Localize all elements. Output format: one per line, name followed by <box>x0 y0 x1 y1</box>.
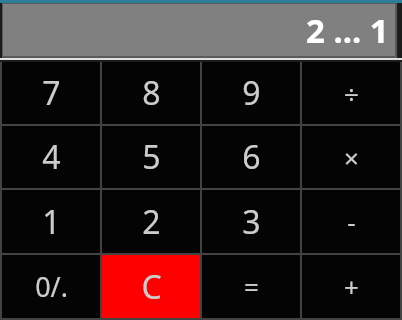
staticText: 8 <box>142 71 161 115</box>
button[interactable]: 4 <box>2 126 100 188</box>
button[interactable]: 1 <box>2 190 100 253</box>
button[interactable]: 3 <box>202 190 300 253</box>
button[interactable]: 0/. <box>2 255 100 318</box>
staticText: 3 <box>242 200 261 244</box>
button[interactable]: × <box>302 126 400 188</box>
button[interactable]: C <box>102 255 200 318</box>
staticText: = <box>244 269 259 304</box>
button[interactable]: = <box>202 255 300 318</box>
staticText: 0/. <box>35 268 68 305</box>
staticText: - <box>347 204 356 239</box>
button[interactable]: 9 <box>202 62 300 124</box>
button[interactable]: 2 <box>102 190 200 253</box>
button[interactable]: 8 <box>102 62 200 124</box>
button[interactable]: 5 <box>102 126 200 188</box>
staticText: 2 <box>142 200 161 244</box>
staticText: 4 <box>42 135 61 179</box>
staticText: 9 <box>242 71 261 115</box>
button[interactable]: + <box>302 255 400 318</box>
staticText: ÷ <box>344 76 359 111</box>
button[interactable]: ÷ <box>302 62 400 124</box>
button[interactable]: 6 <box>202 126 300 188</box>
staticText: C <box>141 265 162 309</box>
button[interactable]: - <box>302 190 400 253</box>
staticText: 6 <box>242 135 261 179</box>
staticText: 2 ... 1 <box>306 8 389 53</box>
staticText: + <box>344 269 359 304</box>
staticText: 1 <box>42 200 61 244</box>
button[interactable]: 7 <box>2 62 100 124</box>
staticText: 5 <box>142 135 161 179</box>
staticText: 7 <box>42 71 61 115</box>
staticText: × <box>344 140 359 175</box>
